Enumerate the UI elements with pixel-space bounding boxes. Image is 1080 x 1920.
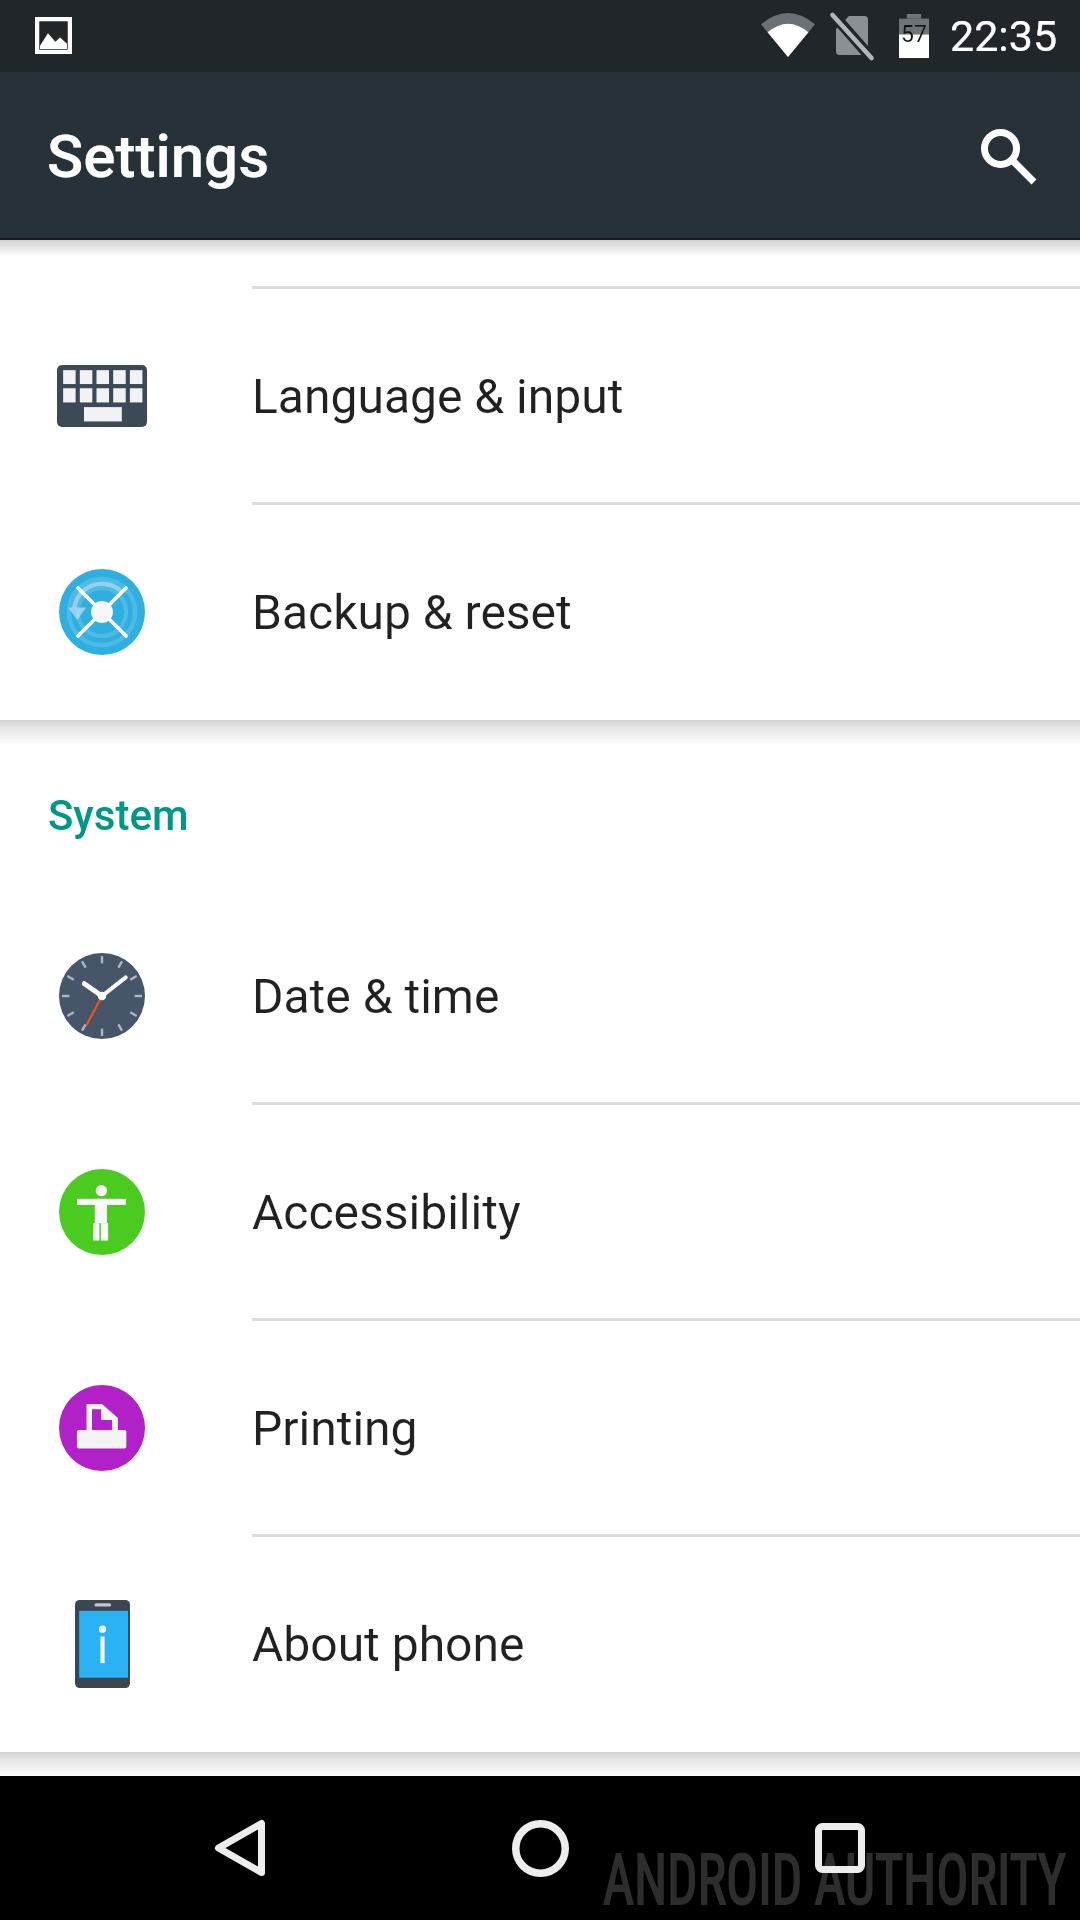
- button[interactable]: About phone: [0, 1534, 1080, 1750]
- button[interactable]: Recent apps: [786, 1794, 894, 1902]
- staticText: About phone: [252, 1616, 525, 1672]
- staticText: Settings: [47, 121, 270, 191]
- staticText: ANDROID AUTHORITY: [603, 1838, 1066, 1920]
- button[interactable]: Home: [486, 1794, 594, 1902]
- staticText: Printing: [252, 1400, 418, 1456]
- staticText: Accessibility: [252, 1184, 521, 1240]
- staticText: Backup & reset: [252, 584, 572, 640]
- button[interactable]: Back: [186, 1794, 294, 1902]
- staticText: System: [48, 791, 189, 840]
- button[interactable]: Printing: [0, 1318, 1080, 1534]
- button[interactable]: Language & input: [0, 286, 1080, 502]
- button[interactable]: Date & time: [0, 886, 1080, 1102]
- staticText: Date & time: [252, 968, 500, 1024]
- button[interactable]: Backup & reset: [0, 502, 1080, 718]
- staticText: 57: [901, 21, 927, 48]
- button[interactable]: Accessibility: [0, 1102, 1080, 1318]
- staticText: 22:35: [950, 11, 1058, 61]
- staticText: Language & input: [252, 368, 624, 424]
- button[interactable]: Search: [936, 84, 1080, 228]
